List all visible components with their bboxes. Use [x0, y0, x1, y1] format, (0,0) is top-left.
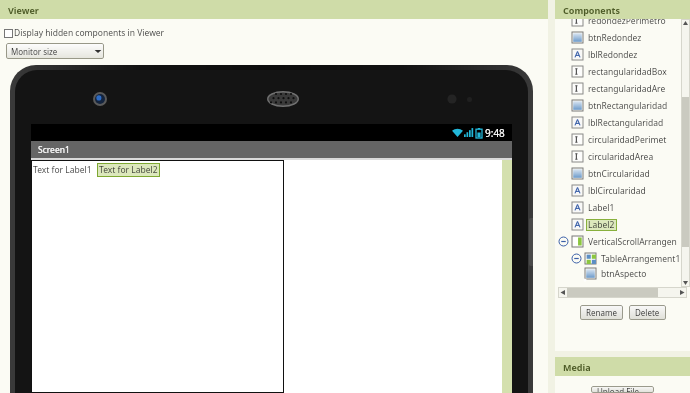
button[interactable]: redondezPerimetro [555, 19, 690, 29]
button[interactable]: rectangularidadAre [555, 80, 690, 97]
staticText: circularidadArea [588, 151, 654, 163]
staticText: Viewer [8, 4, 39, 16]
staticText: TableArrangement1 [601, 253, 681, 265]
other: Signal strength [464, 128, 474, 137]
staticText: Rename [586, 307, 617, 318]
button[interactable]: btnRectangularidad [555, 97, 690, 114]
button[interactable]: lblRectangularidad [555, 114, 690, 131]
staticText: Display hidden components in Viewer [14, 27, 165, 39]
button[interactable]: circularidadPerimet [555, 131, 690, 148]
staticText: Label1 [588, 202, 615, 214]
button[interactable]: btnRedondez [555, 29, 690, 46]
staticText: Screen1 [38, 144, 70, 156]
staticText: lblCircularidad [588, 185, 646, 197]
staticText: btnRedondez [588, 32, 642, 44]
staticText: Text for Label2 [99, 164, 158, 176]
button[interactable]: btnCircularidad [555, 165, 690, 182]
button[interactable]: Collapse node [555, 233, 690, 250]
other: Battery [476, 128, 482, 138]
other: Scroll left [558, 288, 567, 297]
other: Scroll up [681, 19, 690, 27]
button[interactable]: Collapse node [555, 250, 690, 267]
staticText: btnCircularidad [588, 168, 650, 180]
staticText: circularidadPerimet [588, 134, 667, 146]
button[interactable]: btnAspecto [555, 267, 690, 280]
staticText: btnRectangularidad [588, 100, 668, 112]
button[interactable]: circularidadArea [555, 148, 690, 165]
other: Collapse node [572, 254, 581, 263]
staticText: Media [563, 361, 591, 373]
staticText: Label2 [588, 219, 615, 231]
button[interactable]: Delete [629, 305, 666, 320]
staticText: 9:48 [485, 126, 505, 140]
staticText: rectangularidadAre [588, 83, 666, 95]
other: Scroll down [681, 279, 690, 287]
staticText: Monitor size (1024,768) [11, 46, 92, 57]
other: Collapse node [559, 237, 568, 246]
button[interactable]: rectangularidadBox [555, 63, 690, 80]
staticText: btnAspecto [601, 268, 647, 280]
button[interactable]: Upload File ... [591, 386, 654, 393]
button[interactable]: Label1 [555, 199, 690, 216]
button[interactable]: Text for Label2 [97, 163, 160, 177]
staticText: rectangularidadBox [588, 66, 667, 78]
staticText: Delete [635, 307, 660, 318]
button[interactable]: Label2 [555, 216, 690, 233]
button[interactable]: Rename [580, 305, 623, 320]
staticText: Upload File ... [597, 386, 648, 393]
button[interactable]: lblCircularidad [555, 182, 690, 199]
staticText: VerticalScrollArrangen [588, 236, 677, 248]
button[interactable]: lblRedondez [555, 46, 690, 63]
staticText: redondezPerimetro [588, 19, 666, 27]
staticText: lblRectangularidad [588, 117, 664, 129]
staticText: lblRedondez [588, 49, 638, 61]
other: Wi-Fi [452, 128, 463, 137]
button[interactable]: Monitor size (1024,768) [6, 43, 104, 59]
button[interactable]: Text for Label1 [33, 164, 92, 176]
staticText: Components [563, 4, 620, 16]
other: Scroll right [678, 288, 687, 297]
button[interactable]: Display hidden components in Viewer [4, 27, 165, 39]
